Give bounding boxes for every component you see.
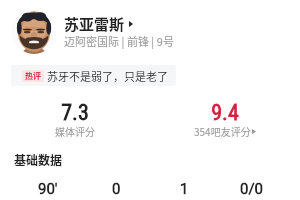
- staticText: 0: [112, 180, 121, 198]
- button[interactable]: 9.4: [150, 98, 300, 143]
- button[interactable]: 热评: [11, 65, 176, 86]
- staticText: 0/0: [240, 180, 264, 198]
- button[interactable]: 7.3: [0, 98, 150, 143]
- staticText: 1: [180, 180, 189, 198]
- staticText: 90': [38, 180, 58, 198]
- staticText: 苏亚雷斯: [64, 13, 125, 35]
- staticText: 354吧友评分: [194, 124, 251, 138]
- staticText: 基础数据: [14, 151, 63, 168]
- staticText: 迈阿密国际 | 前锋 | 9号: [64, 33, 174, 49]
- staticText: 媒体评分: [0, 124, 150, 138]
- staticText: 苏牙不是弱了，只是老了: [47, 68, 168, 84]
- button[interactable]: Player photo: [12, 10, 56, 54]
- staticText: 7.3: [0, 100, 150, 126]
- staticText: 9.4: [150, 100, 300, 126]
- staticText: 热评: [25, 70, 41, 82]
- button[interactable]: 苏亚雷斯: [64, 13, 133, 35]
